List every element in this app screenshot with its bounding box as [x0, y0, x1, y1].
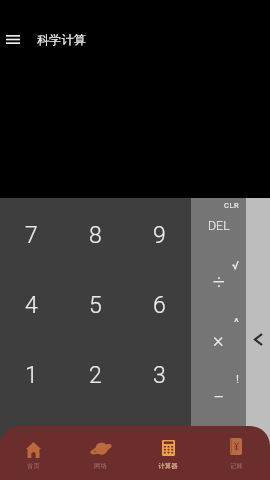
staticText: ^: [234, 315, 240, 328]
staticText: 计算器: [158, 462, 178, 470]
button[interactable]: 7: [0, 198, 63, 268]
staticText: 0: [25, 433, 38, 460]
staticText: 3: [153, 362, 166, 389]
staticText: DEL: [208, 218, 230, 233]
button[interactable]: 6: [127, 268, 191, 338]
staticText: 2: [89, 362, 102, 389]
staticText: 8: [89, 222, 102, 249]
staticText: 科学计算: [37, 32, 86, 47]
button[interactable]: =: [127, 409, 191, 480]
button[interactable]: 记账: [202, 426, 270, 480]
staticText: 网络: [94, 462, 107, 470]
staticText: −: [213, 385, 225, 408]
button[interactable]: 计算器: [134, 426, 202, 480]
staticText: 5: [89, 292, 102, 319]
staticText: √: [232, 258, 240, 271]
staticText: 首页: [27, 462, 40, 470]
button[interactable]: 8: [63, 198, 127, 268]
button[interactable]: 1: [0, 338, 63, 409]
staticText: =: [153, 433, 166, 460]
button[interactable]: 9: [127, 198, 191, 268]
button[interactable]: 4: [0, 268, 63, 338]
button[interactable]: 2: [63, 338, 127, 409]
button[interactable]: 5: [63, 268, 127, 338]
staticText: 记账: [230, 462, 243, 470]
button[interactable]: ^: [191, 312, 246, 369]
button[interactable]: 3: [127, 338, 191, 409]
staticText: ÷: [213, 270, 225, 295]
staticText: 6: [153, 292, 166, 319]
button[interactable]: CLR: [191, 198, 246, 255]
button[interactable]: √: [191, 255, 246, 312]
staticText: !: [236, 372, 240, 385]
staticText: 4: [25, 292, 38, 319]
button[interactable]: !: [191, 369, 246, 426]
staticText: ×: [213, 328, 224, 351]
staticText: 9: [153, 222, 166, 249]
staticText: .: [92, 433, 98, 460]
staticText: CLR: [224, 201, 240, 210]
staticText: 7: [25, 222, 38, 249]
staticText: 1: [25, 362, 38, 389]
button[interactable]: 0: [0, 409, 63, 480]
button[interactable]: 首页: [0, 426, 67, 480]
button[interactable]: Menu: [2, 28, 24, 50]
button[interactable]: .: [63, 409, 127, 480]
button[interactable]: Expand panel: [246, 198, 270, 480]
button[interactable]: 网络: [67, 426, 134, 480]
